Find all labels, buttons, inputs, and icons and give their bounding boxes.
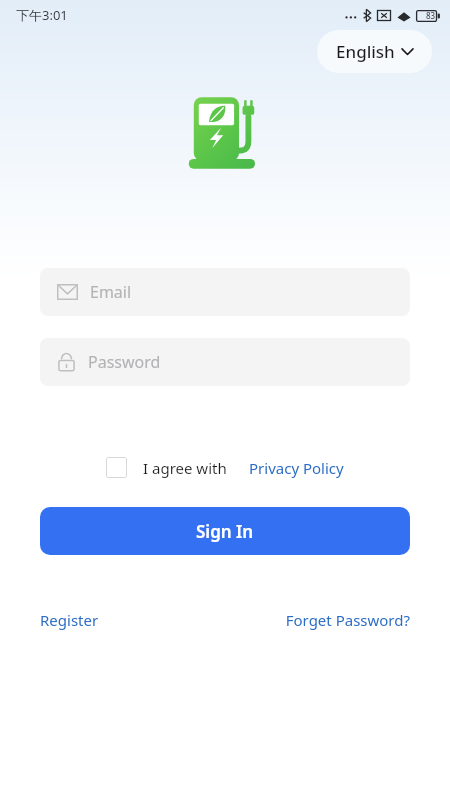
staticText: 下午3:01 [16,6,68,24]
staticText: I agree with [143,458,227,478]
button[interactable]: Forget Password? [285,610,410,630]
button[interactable]: Password [40,338,410,386]
staticText: Password [88,351,161,373]
staticText: 83 [426,10,436,21]
button[interactable]: Agree to terms checkbox [106,457,127,478]
staticText: Forget Password? [285,610,410,630]
staticText: Privacy Policy [249,458,344,478]
button[interactable]: Sign In [40,507,410,555]
button[interactable]: Email [40,268,410,316]
button[interactable]: English [317,30,432,73]
button[interactable]: Register [40,610,99,630]
staticText: Register [40,610,99,630]
staticText: Sign In [196,520,254,543]
staticText: English [336,40,395,63]
staticText: Email [90,281,132,303]
button[interactable]: Privacy Policy [249,458,344,478]
